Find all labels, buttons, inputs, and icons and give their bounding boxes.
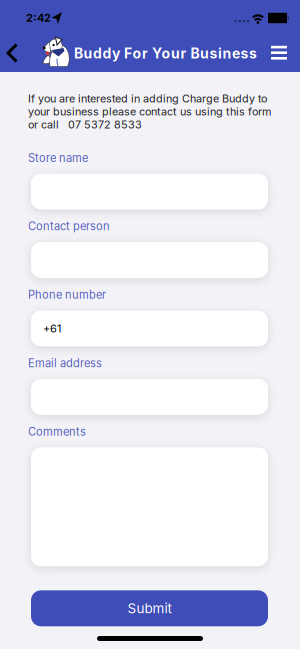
button[interactable]: Back [0,0,30,72]
button[interactable]: Phone number [31,310,268,346]
button[interactable]: Menu [0,0,300,72]
staticText: Buddy For Your Business [74,45,257,62]
staticText: If you are interested in adding Charge B… [28,92,271,131]
staticText: +61 [43,322,61,335]
staticText: Submit [127,600,171,616]
staticText: Comments [28,425,86,438]
staticText: Contact person [28,220,110,233]
button[interactable]: Submit [31,590,268,626]
staticText: Email address [28,356,102,370]
staticText: Store name [28,151,88,165]
staticText: 2:42 [26,11,51,24]
staticText: Phone number [28,288,106,301]
